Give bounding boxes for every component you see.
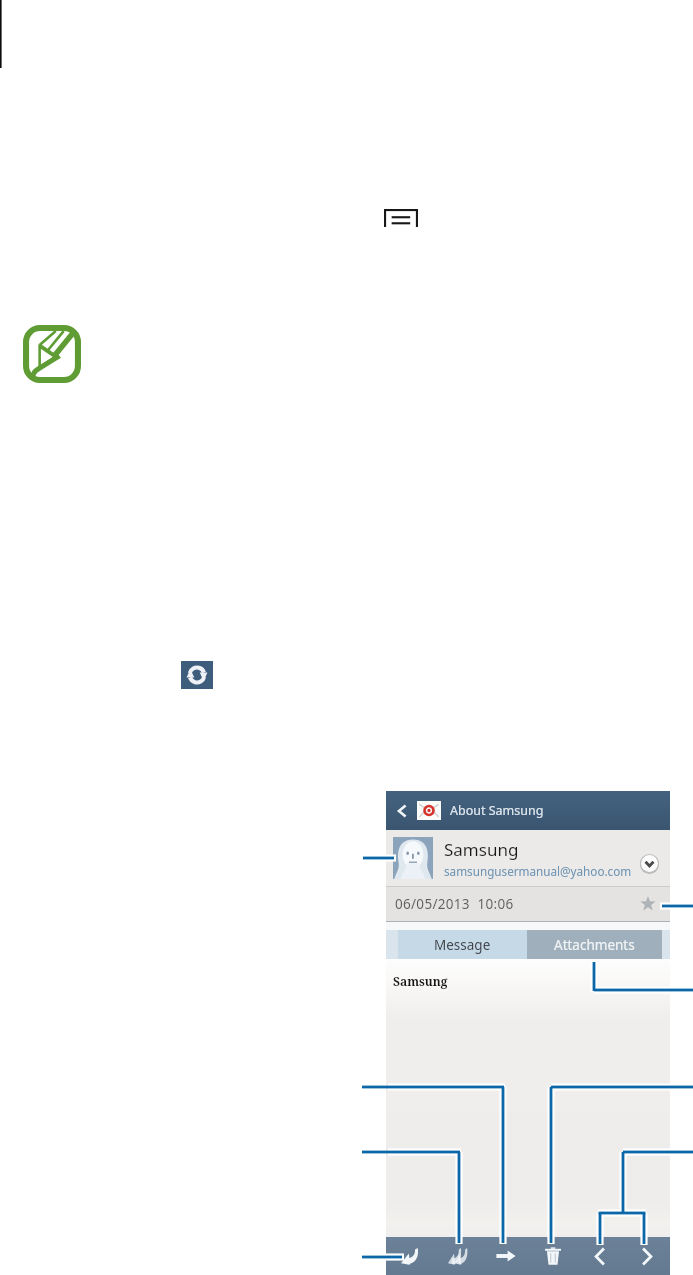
button[interactable]: Previous [576, 1237, 623, 1275]
button[interactable]: Forward [482, 1237, 529, 1275]
button[interactable]: Message [398, 930, 527, 959]
button[interactable]: Back [386, 791, 670, 830]
staticText: 06/05/2013 10:06 [395, 895, 514, 913]
staticText: Samsung [393, 973, 448, 989]
staticText: Attachments [554, 936, 635, 954]
other: Back [395, 804, 409, 818]
button[interactable]: Delete [529, 1237, 576, 1275]
button[interactable]: Reply [386, 1237, 434, 1275]
staticText: samsungusermanual@yahoo.com [444, 863, 632, 879]
staticText: Samsung [444, 838, 519, 861]
staticText: About Samsung [450, 802, 544, 819]
button[interactable]: Next [623, 1237, 670, 1275]
button[interactable]: Reply all [434, 1237, 482, 1275]
button[interactable]: Attachments [527, 930, 662, 959]
button[interactable]: Show details [638, 852, 661, 875]
button[interactable]: Mark as favourite [637, 893, 659, 915]
staticText: Message [434, 936, 491, 954]
